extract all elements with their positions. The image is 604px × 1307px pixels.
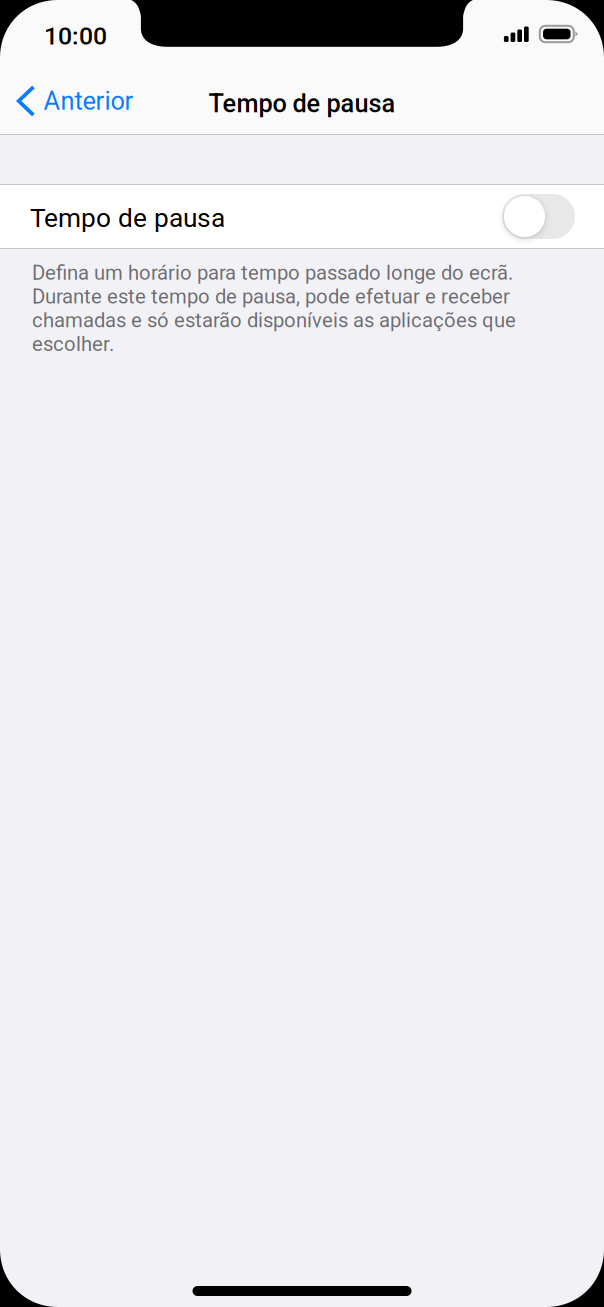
staticText: 10:00 — [44, 21, 107, 51]
staticText: Anterior — [43, 86, 133, 116]
button[interactable]: Tempo de pausa, desativado — [502, 194, 575, 239]
staticText: Tempo de pausa — [208, 89, 395, 118]
staticText: Defina um horário para tempo passado lon… — [32, 261, 516, 356]
button[interactable]: Anterior — [0, 72, 145, 130]
staticText: Tempo de pausa — [30, 203, 225, 233]
